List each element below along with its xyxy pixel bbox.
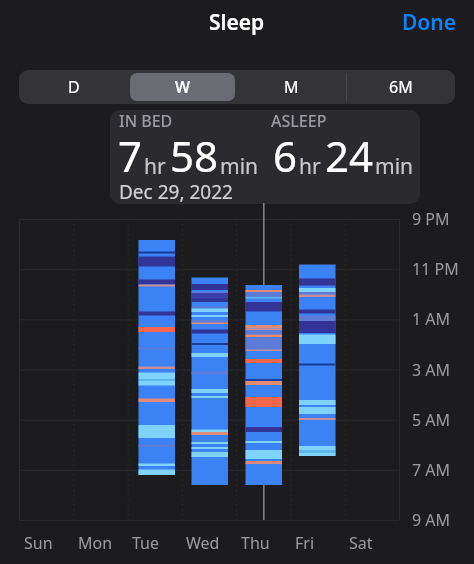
staticText: 1 AM [412, 308, 451, 330]
staticText: 24 [325, 127, 374, 184]
staticText: Thu [241, 532, 270, 554]
staticText: 6 [273, 127, 298, 184]
button[interactable]: IN BED [110, 110, 420, 204]
staticText: hr [144, 152, 166, 181]
staticText: Done [402, 8, 457, 37]
staticText: IN BED [119, 110, 173, 132]
button[interactable]: 6M [346, 70, 455, 104]
staticText: Fri [295, 532, 315, 554]
staticText: Mon [78, 532, 113, 554]
staticText: Tue [132, 532, 160, 554]
staticText: min [375, 152, 414, 181]
staticText: Dec 29, 2022 [119, 179, 233, 204]
staticText: min [220, 152, 259, 181]
button[interactable]: W [128, 70, 237, 104]
staticText: 11 PM [412, 258, 459, 280]
staticText: 9 PM [412, 208, 450, 230]
staticText: 5 AM [412, 409, 451, 431]
staticText: M [284, 76, 299, 98]
staticText: 6M [389, 76, 413, 98]
staticText: Sun [24, 532, 53, 554]
staticText: hr [299, 152, 321, 181]
staticText: Sat [349, 532, 373, 554]
button[interactable]: M [237, 70, 346, 104]
staticText: 7 [118, 127, 143, 184]
staticText: 7 AM [412, 459, 451, 481]
staticText: W [175, 76, 191, 98]
staticText: Sleep [209, 8, 265, 37]
button[interactable]: Done [395, 4, 464, 41]
staticText: Wed [186, 532, 220, 554]
staticText: ASLEEP [271, 110, 327, 132]
staticText: 58 [170, 127, 219, 184]
staticText: 3 AM [412, 359, 451, 381]
staticText: D [68, 76, 80, 98]
staticText: 9 AM [412, 509, 451, 531]
button[interactable]: D [19, 70, 128, 104]
